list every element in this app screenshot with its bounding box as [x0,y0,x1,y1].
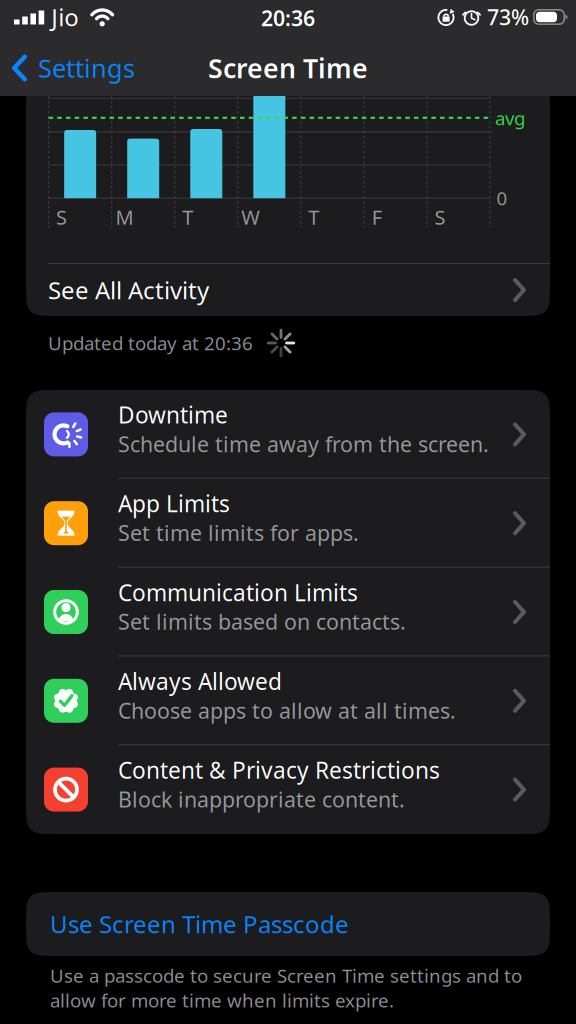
staticText: See All Activity [48,274,209,306]
button[interactable]: Content & Privacy Restrictions [26,745,550,834]
button[interactable]: See All Activity [26,264,550,316]
staticText: Communication Limits [118,577,358,607]
staticText: avg [495,106,525,130]
staticText: 20:36 [261,4,315,32]
staticText: Screen Time [208,50,368,86]
staticText: Schedule time away from the screen. [118,430,489,458]
staticText: Always Allowed [118,666,282,696]
staticText: Updated today at 20:36 [48,331,253,355]
button[interactable]: Always Allowed [26,656,550,745]
staticText: S [434,204,445,230]
button[interactable]: App Limits [26,479,550,568]
staticText: App Limits [118,488,230,519]
button[interactable]: Back to Settings [0,51,135,85]
button[interactable]: Downtime [26,390,550,479]
staticText: T [308,204,319,230]
staticText: Choose apps to allow at all times. [118,696,456,724]
staticText: S [56,204,67,230]
staticText: Block inappropriate content. [118,785,405,813]
staticText: F [372,204,382,230]
staticText: W [241,204,260,230]
staticText: 73% [487,3,529,31]
staticText: Content & Privacy Restrictions [118,755,440,785]
staticText: Jio [51,1,79,33]
staticText: Set limits based on contacts. [118,607,406,636]
staticText: Settings [38,51,135,85]
staticText: Use a passcode to secure Screen Time set… [50,963,522,988]
staticText: Downtime [118,400,228,430]
staticText: 0 [496,186,507,210]
staticText: T [182,204,193,230]
staticText: Set time limits for apps. [118,519,359,547]
button[interactable]: Use Screen Time Passcode [26,892,550,956]
staticText: allow for more time when limits expire. [50,988,394,1013]
staticText: Use Screen Time Passcode [50,908,349,940]
staticText: M [116,204,134,230]
button[interactable]: Communication Limits [26,568,550,656]
